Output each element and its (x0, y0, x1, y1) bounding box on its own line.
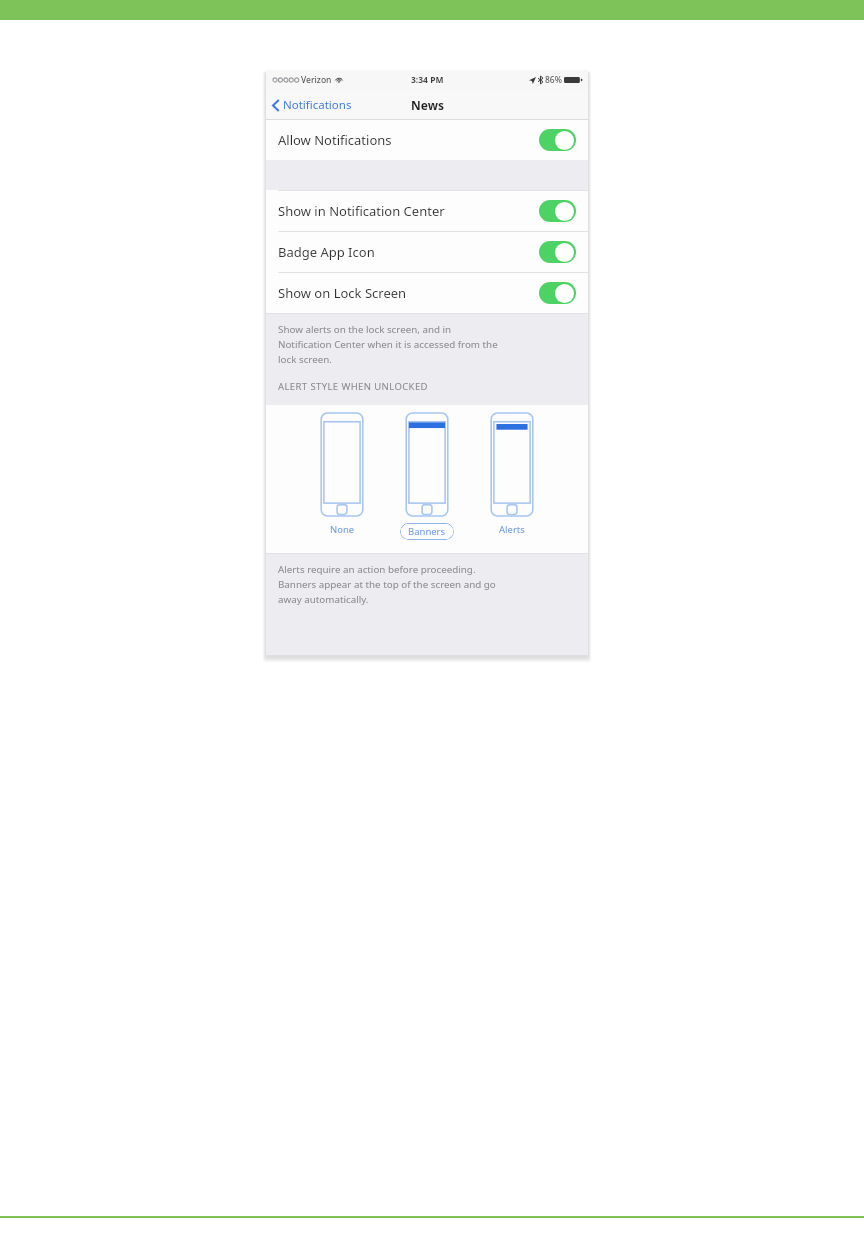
button[interactable]: Badge App Icon (266, 232, 588, 272)
staticText: Banners (408, 525, 446, 538)
button[interactable]: Notifications (266, 90, 360, 120)
staticText: Allow Notifications (278, 131, 392, 149)
button[interactable]: None (312, 413, 372, 536)
staticText: Badge App Icon (278, 243, 375, 261)
button[interactable]: Toggle on (539, 200, 576, 222)
button[interactable]: Show on Lock Screen (266, 273, 588, 313)
staticText: 3:34 PM (411, 74, 444, 86)
staticText: 86% (545, 74, 562, 86)
staticText: Verizon (301, 74, 332, 86)
button[interactable]: Toggle on (539, 282, 576, 304)
staticText: Alerts require an action before proceedi… (278, 563, 476, 576)
button[interactable]: Alerts (482, 413, 542, 536)
button[interactable]: Banners (396, 413, 458, 540)
staticText: Banners appear at the top of the screen … (278, 578, 496, 591)
staticText: lock screen. (278, 353, 332, 366)
staticText: Show in Notification Center (278, 202, 445, 220)
staticText: None (330, 523, 355, 536)
staticText: Show alerts on the lock screen, and in (278, 323, 452, 336)
button[interactable]: Show in Notification Center (266, 191, 588, 231)
staticText: away automatically. (278, 593, 369, 606)
button[interactable]: Toggle on (539, 129, 576, 151)
button[interactable]: Allow Notifications (266, 120, 588, 160)
staticText: Notifications (283, 97, 352, 113)
staticText: News (411, 97, 444, 113)
staticText: Show on Lock Screen (278, 284, 407, 302)
staticText: Notification Center when it is accessed … (278, 338, 498, 351)
staticText: ALERT STYLE WHEN UNLOCKED (278, 380, 428, 393)
button[interactable]: Toggle on (539, 241, 576, 263)
staticText: Alerts (499, 523, 525, 536)
